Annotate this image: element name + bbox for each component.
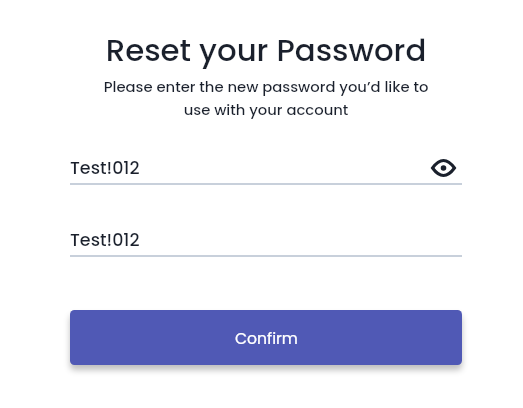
button[interactable]: Show password bbox=[427, 153, 459, 183]
staticText: Test!012 bbox=[70, 228, 140, 253]
staticText: Test!012 bbox=[70, 156, 140, 181]
button[interactable]: Test!012 bbox=[70, 220, 462, 257]
staticText: Reset your Password bbox=[70, 29, 462, 72]
staticText: Please enter the new password you’d like… bbox=[70, 76, 462, 120]
button[interactable]: Confirm bbox=[70, 310, 462, 365]
button[interactable]: Test!012 bbox=[70, 148, 462, 185]
staticText: Confirm bbox=[235, 328, 298, 350]
